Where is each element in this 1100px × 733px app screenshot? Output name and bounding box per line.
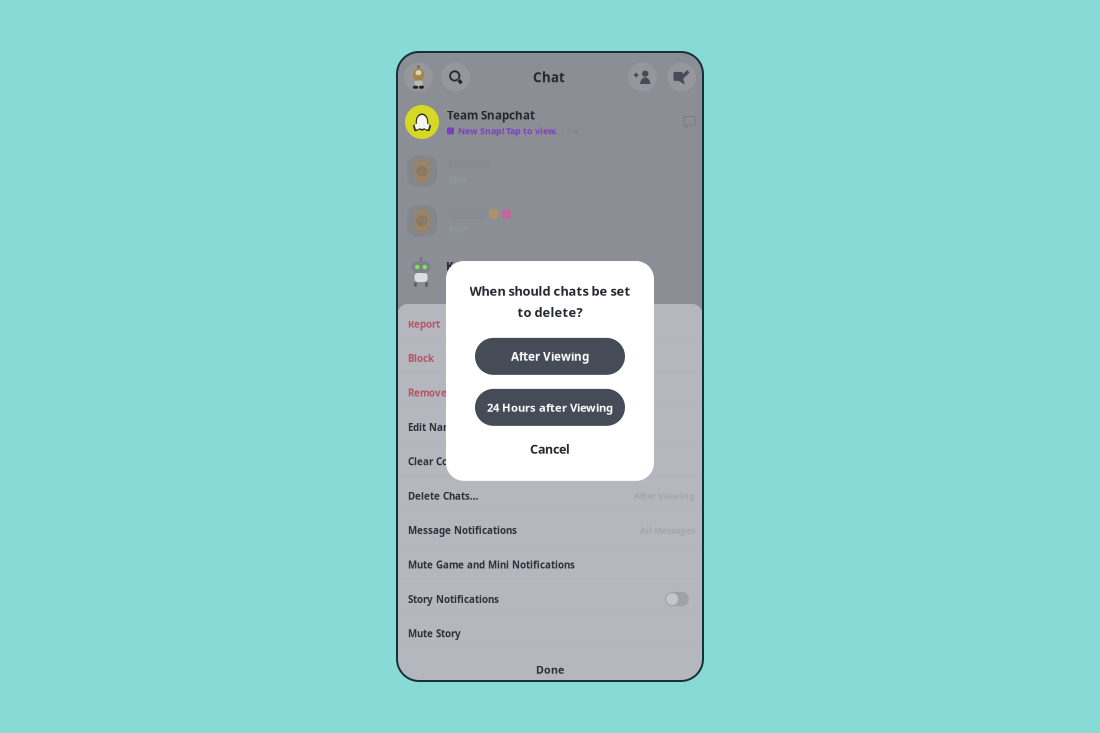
staticText: Mute Story (408, 627, 461, 640)
staticText: Mute Game and Mini Notifications (408, 558, 575, 571)
staticText: All Messages (640, 524, 695, 536)
staticText: Team Snapchat (447, 107, 535, 123)
staticText: When should chats be set (469, 282, 630, 299)
button[interactable]: 24 Hours after Viewing (475, 389, 625, 426)
button[interactable]: Message Notifications (397, 510, 703, 545)
button[interactable]: Team Snapchat (397, 98, 703, 146)
button[interactable]: Story Notifications (397, 579, 703, 614)
staticText: Cancel (530, 440, 570, 457)
button[interactable]: Delete Chats… (397, 476, 703, 510)
staticText: 24 Hours after Viewing (487, 400, 613, 415)
staticText: Done (536, 662, 564, 677)
staticText: Block (408, 352, 434, 365)
button[interactable]: Done (397, 648, 703, 681)
button[interactable]: After Viewing (475, 338, 625, 375)
staticText: Story Notifications (408, 592, 499, 606)
staticText: to delete? (517, 303, 582, 321)
staticText: After Viewing (511, 348, 589, 364)
button[interactable]: Report (397, 304, 703, 338)
staticText: Report (408, 317, 440, 331)
staticText: Delete Chats… (408, 489, 478, 503)
staticText: Edit Name (408, 420, 458, 434)
button[interactable]: Cancel (475, 435, 625, 463)
staticText: New Snap! Tap to view. (458, 125, 557, 137)
button[interactable]: New chat (667, 62, 696, 91)
staticText: K (446, 258, 454, 274)
button[interactable]: Mute Story (397, 614, 703, 648)
staticText: Chat (533, 68, 565, 86)
button[interactable]: Profile (404, 62, 433, 91)
button[interactable]: Block (397, 338, 703, 373)
staticText: After Viewing (634, 490, 695, 502)
staticText: Clear Conversation (408, 455, 500, 468)
button[interactable]: Clear Conversation (397, 442, 703, 476)
button[interactable]: Mute Game and Mini Notifications (397, 545, 703, 579)
button[interactable]: Add friend (628, 62, 657, 91)
button[interactable]: Remove Friend (397, 373, 703, 407)
staticText: Remove Friend (408, 386, 480, 399)
button[interactable]: Search (441, 62, 470, 91)
button[interactable]: Edit Name (397, 407, 703, 442)
staticText: Message Notifications (408, 524, 517, 537)
button[interactable] (397, 196, 703, 246)
button[interactable] (397, 146, 703, 196)
